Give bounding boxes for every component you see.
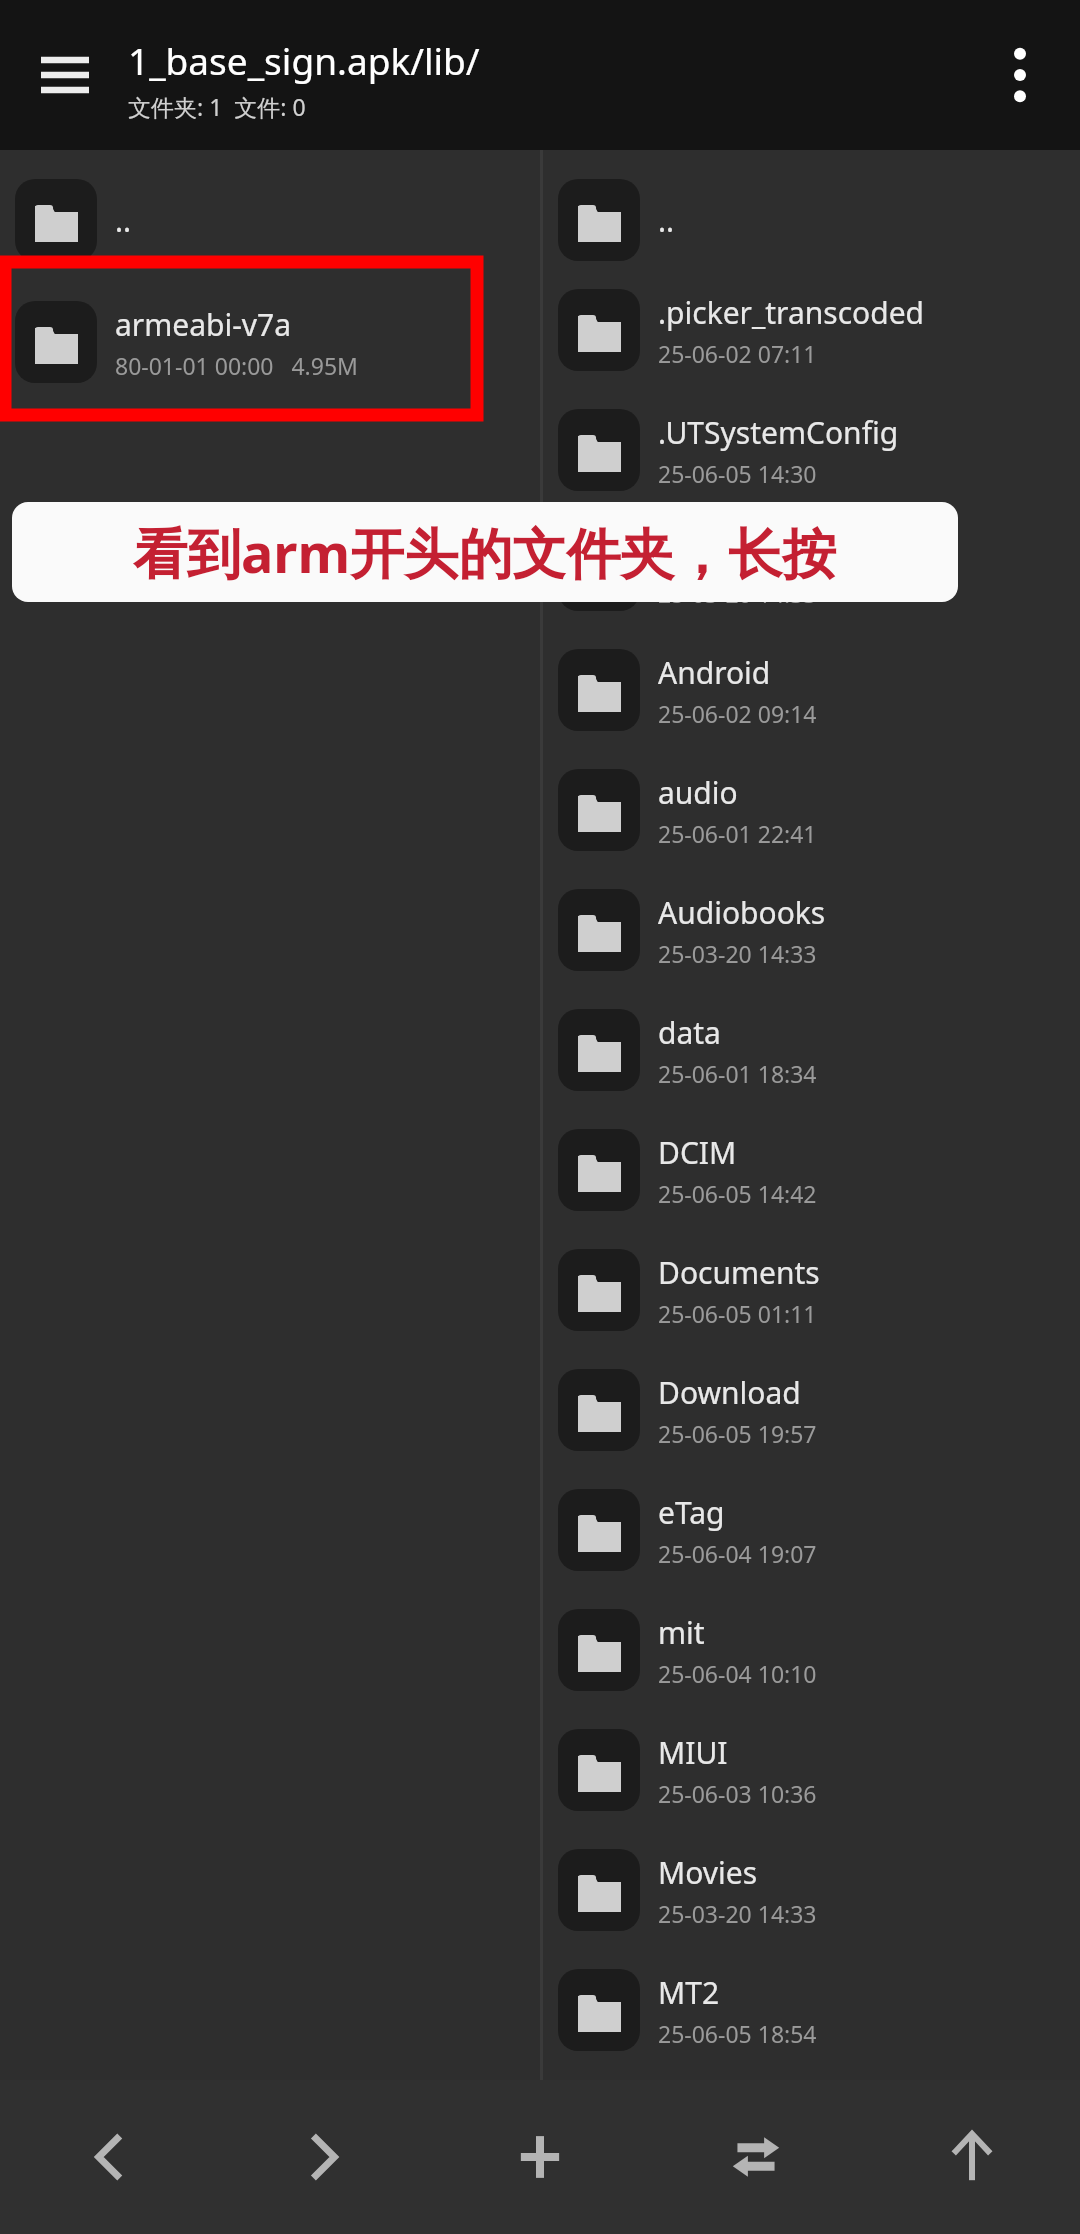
button[interactable]: .. <box>0 170 540 270</box>
staticText: 25-03-20 14:33 <box>658 1898 817 1929</box>
button[interactable]: Forward <box>216 2080 432 2234</box>
staticText: 25-03-20 14:33 <box>658 938 817 969</box>
staticText: DCIM <box>658 1132 737 1173</box>
button[interactable]: MT2 <box>543 1950 1080 2070</box>
button[interactable]: Switch panes <box>648 2080 864 2234</box>
staticText: 80-01-01 00:00 4.95M <box>115 350 358 381</box>
staticText: 25-06-02 09:14 <box>658 698 817 729</box>
staticText: data <box>658 1012 721 1053</box>
staticText: MT2 <box>658 1972 720 2013</box>
staticText: eTag <box>658 1492 725 1533</box>
staticText: Alarms <box>658 532 757 573</box>
button[interactable]: More options <box>970 25 1070 125</box>
button[interactable]: Movies <box>543 1830 1080 1950</box>
staticText: 25-06-05 18:54 <box>658 2018 817 2049</box>
button[interactable]: Back <box>0 2080 216 2234</box>
button[interactable]: .. <box>543 170 1080 270</box>
button[interactable]: MIUI <box>543 1710 1080 1830</box>
staticText: 25-03-20 14:33 <box>658 578 817 609</box>
button[interactable]: Add <box>432 2080 648 2234</box>
staticText: 25-06-02 07:11 <box>658 338 817 369</box>
staticText: audio <box>658 772 738 813</box>
button[interactable]: Android <box>543 630 1080 750</box>
staticText: armeabi-v7a <box>115 304 292 345</box>
staticText: 25-06-01 22:41 <box>658 818 817 849</box>
button[interactable]: Menu <box>20 30 110 120</box>
button[interactable]: mit <box>543 1590 1080 1710</box>
button[interactable]: Up <box>864 2080 1080 2234</box>
staticText: 25-06-05 14:30 <box>658 458 817 489</box>
staticText: 25-06-05 14:42 <box>658 1178 817 1209</box>
button[interactable]: audio <box>543 750 1080 870</box>
staticText: MIUI <box>658 1732 728 1773</box>
button[interactable]: Download <box>543 1350 1080 1470</box>
button[interactable]: data <box>543 990 1080 1110</box>
button[interactable]: armeabi-v7a <box>0 282 540 402</box>
staticText: 25-06-04 10:10 <box>658 1658 817 1689</box>
staticText: 25-06-05 19:57 <box>658 1418 817 1449</box>
staticText: Download <box>658 1372 801 1413</box>
staticText: .. <box>658 200 675 241</box>
staticText: 文件夹: 1 文件: 0 <box>128 91 306 122</box>
staticText: 看到arm开头的文件夹，长按 <box>133 515 837 589</box>
staticText: 25-06-04 19:07 <box>658 1538 817 1569</box>
staticText: Audiobooks <box>658 892 826 933</box>
staticText: Movies <box>658 1852 758 1893</box>
staticText: Android <box>658 652 771 693</box>
button[interactable]: DCIM <box>543 1110 1080 1230</box>
button[interactable]: Documents <box>543 1230 1080 1350</box>
staticText: 25-06-03 10:36 <box>658 1778 817 1809</box>
button[interactable]: .UTSystemConfig <box>543 390 1080 510</box>
staticText: mit <box>658 1612 705 1653</box>
staticText: 25-06-01 18:34 <box>658 1058 817 1089</box>
button[interactable]: .picker_transcoded <box>543 270 1080 390</box>
button[interactable]: eTag <box>543 1470 1080 1590</box>
staticText: 25-06-05 01:11 <box>658 1298 817 1329</box>
staticText: Documents <box>658 1252 820 1293</box>
staticText: 1_base_sign.apk/lib/ <box>128 35 480 85</box>
button[interactable]: Audiobooks <box>543 870 1080 990</box>
staticText: .picker_transcoded <box>658 292 925 333</box>
staticText: .UTSystemConfig <box>658 412 899 453</box>
button[interactable]: Alarms <box>543 510 1080 630</box>
staticText: .. <box>115 200 132 241</box>
